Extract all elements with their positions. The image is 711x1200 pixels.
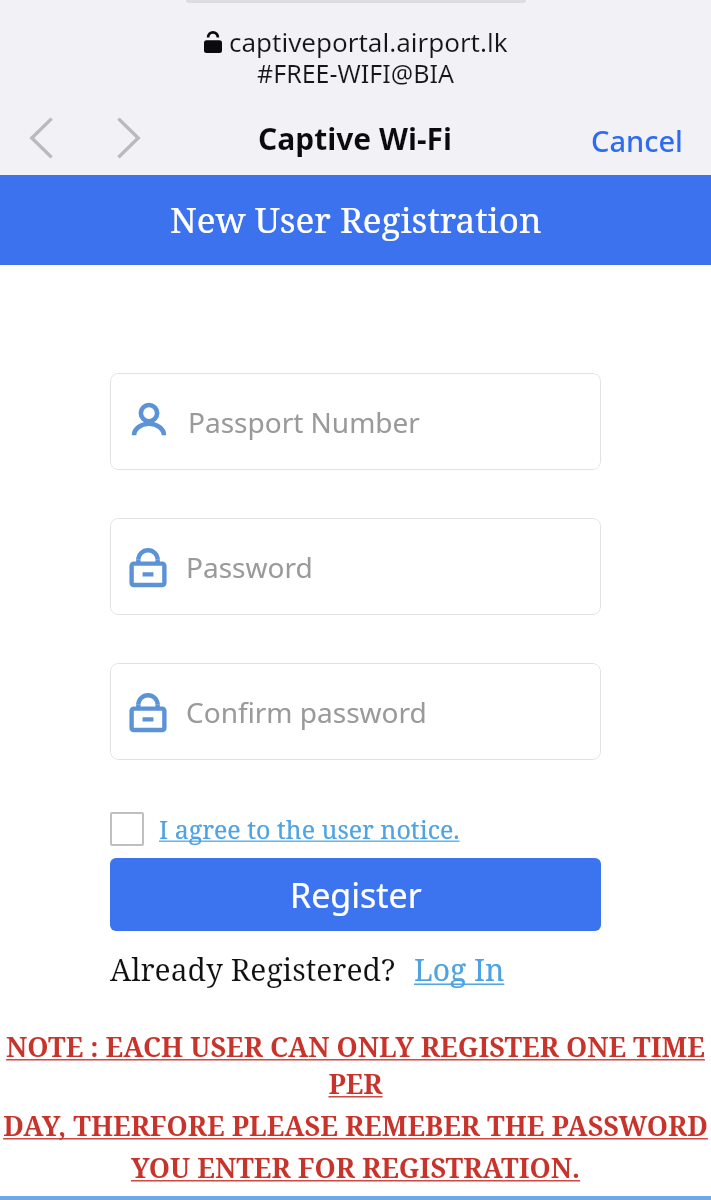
staticText: Password bbox=[186, 548, 313, 586]
staticText: Confirm password bbox=[186, 693, 427, 731]
button[interactable]: Back bbox=[14, 113, 70, 163]
button[interactable]: Password bbox=[110, 518, 601, 615]
staticText: Register bbox=[290, 872, 422, 918]
staticText: DAY, THERFORE PLEASE REMEBER THE PASSWOR… bbox=[0, 1107, 711, 1144]
staticText: NOTE : EACH USER CAN ONLY REGISTER ONE T… bbox=[0, 1028, 711, 1102]
button[interactable]: Confirm password bbox=[110, 663, 601, 760]
button[interactable]: Register bbox=[110, 858, 601, 931]
staticText: I agree to the user notice. bbox=[159, 812, 460, 846]
button[interactable]: I agree to the user notice. bbox=[110, 812, 460, 846]
button[interactable]: Passport Number bbox=[110, 373, 601, 470]
button[interactable]: Cancel bbox=[563, 113, 711, 163]
staticText: Captive Wi-Fi bbox=[258, 118, 453, 159]
staticText: Already Registered? bbox=[110, 949, 396, 990]
staticText: YOU ENTER FOR REGISTRATION. bbox=[0, 1149, 711, 1186]
staticText: Log In bbox=[414, 949, 505, 990]
staticText: Passport Number bbox=[188, 403, 420, 441]
staticText: Cancel bbox=[591, 121, 683, 155]
staticText: New User Registration bbox=[170, 196, 542, 244]
staticText: captiveportal.airport.lk bbox=[229, 24, 508, 59]
button[interactable]: Forward bbox=[100, 113, 156, 163]
button[interactable]: Log In bbox=[414, 949, 505, 990]
staticText: #FREE-WIFI@BIA bbox=[257, 56, 454, 90]
